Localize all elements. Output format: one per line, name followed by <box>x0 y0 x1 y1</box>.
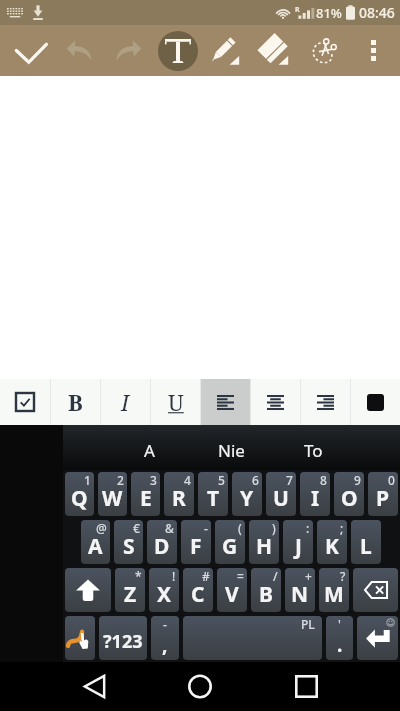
staticText: A <box>144 439 155 462</box>
button[interactable]: O <box>334 472 364 516</box>
button[interactable]: Nie <box>190 425 272 470</box>
staticText: 7 <box>286 472 293 488</box>
staticText: @ <box>96 520 107 536</box>
button[interactable]: E <box>131 472 160 516</box>
button[interactable]: X <box>149 568 179 612</box>
staticText: To <box>304 439 323 462</box>
button[interactable]: Q <box>65 472 94 516</box>
staticText: O <box>341 484 358 513</box>
staticText: I <box>311 484 320 513</box>
button[interactable]: N <box>285 568 315 612</box>
button[interactable]: Recent apps <box>212 662 400 711</box>
button[interactable]: Lasso select <box>300 25 349 76</box>
staticText: K <box>325 532 339 561</box>
button[interactable]: T <box>198 472 228 516</box>
button[interactable]: Shift <box>65 568 111 612</box>
button[interactable]: A <box>108 425 190 470</box>
staticText: & <box>165 520 174 536</box>
staticText: Y <box>240 484 254 513</box>
button[interactable]: R <box>164 472 194 516</box>
staticText: P <box>376 484 390 513</box>
button[interactable]: Back <box>0 662 188 711</box>
staticText: 1 <box>84 472 91 488</box>
staticText: B <box>68 387 83 417</box>
button[interactable]: Z <box>115 568 145 612</box>
button[interactable]: F <box>181 520 211 564</box>
staticText: 6 <box>252 472 259 488</box>
staticText: R <box>172 484 186 513</box>
staticText: Z <box>124 580 137 609</box>
button[interactable]: A <box>81 520 110 564</box>
button[interactable]: B <box>251 568 281 612</box>
button[interactable]: ?123 <box>99 616 147 660</box>
staticText: V <box>225 580 239 609</box>
button[interactable]: J <box>283 520 313 564</box>
staticText: , <box>162 632 168 658</box>
button[interactable]: Align right <box>301 379 350 425</box>
staticText: X <box>157 580 172 609</box>
button[interactable]: Align left <box>201 379 250 425</box>
button[interactable]: More options <box>349 25 398 76</box>
button[interactable]: PL <box>183 616 322 660</box>
button[interactable]: W <box>98 472 127 516</box>
button[interactable]: Align center <box>251 379 300 425</box>
button[interactable]: G <box>215 520 245 564</box>
staticText: S <box>123 532 135 561</box>
staticText: I <box>121 387 130 417</box>
button[interactable]: Redo <box>104 25 153 76</box>
staticText: 08:46 <box>359 3 395 22</box>
button[interactable]: V <box>217 568 247 612</box>
button[interactable]: Checklist <box>0 379 50 425</box>
button[interactable]: Done <box>7 25 55 76</box>
staticText: : <box>306 520 310 536</box>
button[interactable]: Undo <box>55 25 104 76</box>
staticText: 5 <box>218 472 225 488</box>
button[interactable]: Handwriting <box>65 616 95 660</box>
button[interactable]: To <box>272 425 354 470</box>
button[interactable]: Backspace <box>353 568 398 612</box>
staticText: ? <box>340 568 346 584</box>
staticText: 81% <box>316 4 342 22</box>
staticText: 9 <box>354 472 361 488</box>
button[interactable]: I <box>300 472 330 516</box>
button[interactable]: Text colour <box>351 379 400 425</box>
button[interactable]: U <box>266 472 296 516</box>
button[interactable]: Text tool <box>153 25 202 76</box>
staticText: - <box>204 520 208 536</box>
staticText: E <box>140 484 152 513</box>
button[interactable]: , <box>151 616 179 660</box>
staticText: Q <box>71 484 88 513</box>
button[interactable]: Bold <box>51 379 100 425</box>
button[interactable]: Underline <box>151 379 200 425</box>
button[interactable]: Enter <box>357 616 398 660</box>
staticText: ! <box>172 568 176 584</box>
staticText: M <box>324 580 344 609</box>
button[interactable]: Home <box>188 662 212 711</box>
button[interactable]: Italic <box>101 379 150 425</box>
button[interactable]: P <box>368 472 398 516</box>
button[interactable]: D <box>147 520 177 564</box>
staticText: J <box>295 532 302 561</box>
button[interactable]: Eraser <box>251 25 300 76</box>
staticText: T <box>207 484 220 513</box>
button[interactable]: L <box>351 520 381 564</box>
staticText: 4 <box>184 472 191 488</box>
button[interactable]: K <box>317 520 347 564</box>
button[interactable]: S <box>114 520 143 564</box>
staticText: ' <box>338 616 341 632</box>
button[interactable]: . <box>326 616 353 660</box>
staticText: R <box>295 5 300 15</box>
staticText: ( <box>238 520 242 536</box>
staticText: * <box>135 568 142 584</box>
staticText: D <box>154 532 170 561</box>
staticText: N <box>291 580 309 609</box>
button[interactable]: Pen tool <box>202 25 251 76</box>
staticText: . <box>337 632 343 658</box>
staticText: PL <box>301 616 315 632</box>
button[interactable]: H <box>249 520 279 564</box>
button[interactable]: M <box>319 568 349 612</box>
staticText: Nie <box>218 439 245 462</box>
staticText: U <box>168 387 184 417</box>
button[interactable]: C <box>183 568 213 612</box>
button[interactable]: Y <box>232 472 262 516</box>
